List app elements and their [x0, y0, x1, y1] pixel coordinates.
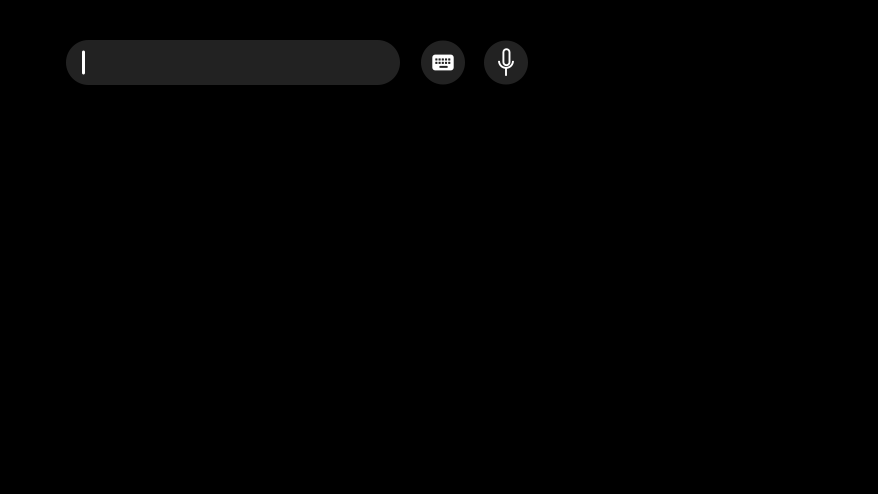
button[interactable]: Dictate — [484, 40, 528, 84]
button[interactable]: Keyboard — [421, 40, 465, 84]
button[interactable]: Search — [66, 40, 400, 85]
